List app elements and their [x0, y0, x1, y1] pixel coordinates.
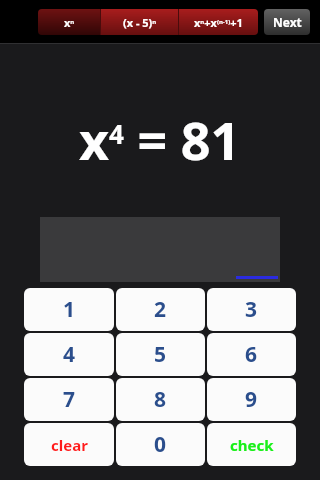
button[interactable]: Next [264, 9, 310, 35]
staticText: xn+x(n-1)+1 [194, 15, 243, 30]
button[interactable]: xn [38, 9, 100, 35]
button[interactable]: check [207, 423, 296, 466]
staticText: 8 [154, 385, 167, 414]
staticText: 5 [154, 340, 167, 369]
button[interactable]: 3 [207, 288, 296, 331]
button[interactable]: clear [24, 423, 114, 466]
button[interactable]: 0 [116, 423, 205, 466]
staticText: Next [273, 14, 302, 30]
button[interactable]: 7 [24, 378, 114, 421]
staticText: check [230, 435, 274, 455]
staticText: 1 [63, 295, 76, 324]
staticText: (x - 5)n [123, 15, 157, 30]
staticText: xn [64, 15, 75, 30]
staticText: 0 [154, 430, 167, 459]
button[interactable]: 4 [24, 333, 114, 376]
staticText: 7 [63, 385, 76, 414]
button[interactable]: 5 [116, 333, 205, 376]
button[interactable]: xn+x(n-1)+1 [179, 9, 258, 35]
button[interactable]: 6 [207, 333, 296, 376]
button[interactable]: 1 [24, 288, 114, 331]
button[interactable]: 9 [207, 378, 296, 421]
staticText: x4 = 81 [79, 104, 241, 175]
staticText: 9 [245, 385, 258, 414]
button[interactable]: 8 [116, 378, 205, 421]
button[interactable] [40, 217, 280, 282]
staticText: 2 [154, 295, 167, 324]
staticText: clear [51, 435, 88, 455]
button[interactable]: 2 [116, 288, 205, 331]
staticText: 6 [245, 340, 258, 369]
button[interactable]: (x - 5)n [101, 9, 178, 35]
staticText: 4 [63, 340, 76, 369]
staticText: 3 [245, 295, 258, 324]
